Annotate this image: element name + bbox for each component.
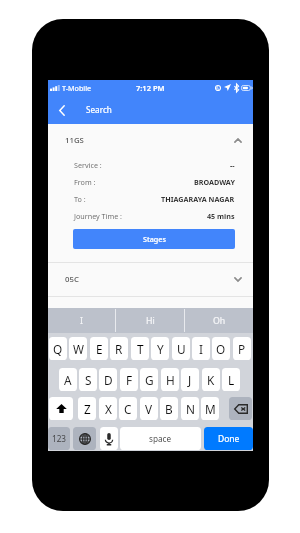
- staticText: C: [124, 401, 132, 417]
- button[interactable]: E: [90, 337, 108, 360]
- button[interactable]: W: [69, 337, 87, 360]
- staticText: space: [149, 433, 172, 444]
- staticText: M: [205, 401, 216, 417]
- staticText: K: [207, 372, 215, 388]
- button[interactable]: X: [99, 397, 117, 420]
- button[interactable]: V: [140, 397, 158, 420]
- button[interactable]: Stages: [73, 229, 235, 249]
- button[interactable]: I: [48, 308, 115, 333]
- staticText: L: [228, 372, 235, 388]
- staticText: P: [238, 341, 246, 357]
- button[interactable]: Y: [151, 337, 169, 360]
- staticText: Stages: [143, 234, 166, 244]
- button[interactable]: C: [119, 397, 137, 420]
- button[interactable]: I: [192, 337, 210, 360]
- button[interactable]: R: [110, 337, 128, 360]
- staticText: T-Mobile: [62, 83, 92, 93]
- button[interactable]: 123: [48, 427, 70, 450]
- button[interactable]: T: [131, 337, 149, 360]
- button[interactable]: Back: [51, 99, 73, 121]
- staticText: R: [115, 341, 123, 357]
- staticText: Done: [218, 433, 240, 445]
- staticText: I: [199, 341, 203, 357]
- staticText: N: [186, 401, 195, 417]
- button[interactable]: D: [99, 368, 117, 391]
- staticText: From :: [74, 177, 96, 187]
- button[interactable]: P: [233, 337, 251, 360]
- button[interactable]: Q: [49, 337, 67, 360]
- button[interactable]: S: [79, 368, 97, 391]
- staticText: 7:12 PM: [136, 83, 165, 93]
- staticText: Q: [53, 341, 63, 357]
- button[interactable]: J: [181, 368, 199, 391]
- button[interactable]: Shift: [49, 397, 73, 420]
- staticText: Oh: [213, 315, 226, 327]
- staticText: F: [126, 372, 133, 388]
- staticText: T: [137, 341, 144, 357]
- staticText: O: [216, 341, 226, 357]
- button[interactable]: B: [160, 397, 178, 420]
- staticText: W: [73, 341, 84, 357]
- button[interactable]: space: [120, 427, 201, 450]
- button[interactable]: Oh: [185, 308, 253, 333]
- staticText: BROADWAY: [194, 177, 235, 187]
- button[interactable]: Switch keyboard: [73, 427, 96, 450]
- staticText: THIAGARAYA NAGAR: [161, 194, 235, 204]
- staticText: Journey Time :: [74, 211, 123, 221]
- staticText: 45 mins: [207, 211, 235, 221]
- button[interactable]: N: [181, 397, 199, 420]
- staticText: J: [188, 372, 192, 388]
- button[interactable]: A: [59, 368, 77, 391]
- button[interactable]: Dictate: [100, 427, 118, 450]
- button[interactable]: F: [120, 368, 138, 391]
- staticText: --: [230, 160, 235, 170]
- staticText: D: [104, 372, 113, 388]
- button[interactable]: L: [222, 368, 240, 391]
- staticText: Service :: [74, 160, 102, 170]
- staticText: Y: [157, 341, 164, 357]
- staticText: V: [145, 401, 153, 417]
- button[interactable]: M: [201, 397, 219, 420]
- staticText: To :: [74, 194, 86, 204]
- staticText: 11GS: [65, 135, 84, 146]
- staticText: Search: [86, 104, 112, 115]
- staticText: G: [145, 372, 154, 388]
- button[interactable]: Done: [204, 427, 253, 450]
- button[interactable]: Z: [78, 397, 96, 420]
- button[interactable]: U: [172, 337, 190, 360]
- staticText: I: [80, 315, 83, 327]
- button[interactable]: 11GS: [65, 124, 242, 156]
- staticText: 10SS: [65, 308, 83, 319]
- button[interactable]: K: [202, 368, 220, 391]
- staticText: U: [177, 341, 186, 357]
- staticText: 123: [52, 433, 67, 444]
- staticText: X: [105, 401, 112, 417]
- staticText: E: [96, 341, 103, 357]
- button[interactable]: G: [140, 368, 158, 391]
- staticText: B: [165, 401, 173, 417]
- button[interactable]: 10SS: [65, 297, 242, 330]
- button[interactable]: Backspace: [229, 397, 252, 420]
- button[interactable]: 05C: [65, 263, 242, 296]
- staticText: Z: [84, 401, 91, 417]
- staticText: 05C: [65, 274, 79, 285]
- staticText: Hi: [146, 315, 155, 327]
- button[interactable]: Hi: [116, 308, 184, 333]
- button[interactable]: H: [161, 368, 179, 391]
- staticText: A: [64, 372, 72, 388]
- staticText: S: [85, 372, 92, 388]
- staticText: H: [166, 372, 175, 388]
- button[interactable]: O: [212, 337, 230, 360]
